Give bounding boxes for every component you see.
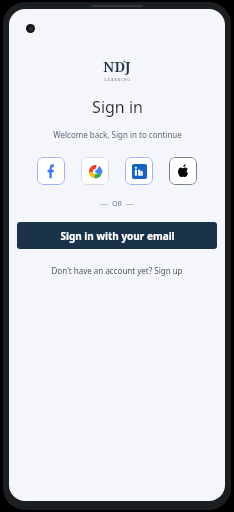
staticText: Sign in	[92, 96, 143, 118]
button[interactable]: Sign in with LinkedIn	[125, 157, 153, 185]
button[interactable]: Sign in with your email	[17, 222, 217, 249]
button[interactable]: Don't have an account yet? Sign up	[47, 263, 187, 278]
button[interactable]: Sign in with Facebook	[37, 157, 65, 185]
staticText: NDJ	[103, 57, 131, 76]
staticText: OR	[112, 199, 122, 209]
button[interactable]: Sign in with Apple	[169, 157, 197, 185]
button[interactable]: Sign in with Google	[81, 157, 109, 185]
staticText: Sign in with your email	[60, 229, 175, 243]
staticText: Welcome back, Sign in to continue	[53, 129, 182, 140]
staticText: Don't have an account yet? Sign up	[51, 265, 183, 276]
staticText: LEARNING	[104, 77, 131, 82]
